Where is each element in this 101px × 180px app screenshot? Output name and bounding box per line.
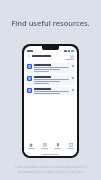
button[interactable]: Open link bbox=[26, 75, 75, 85]
staticText: do eiusmod tempor incididunt ut labore m… bbox=[18, 170, 84, 174]
button[interactable]: Open link bbox=[71, 88, 74, 91]
staticText: Find useful resources. bbox=[0, 18, 101, 28]
button[interactable]: Saved bbox=[51, 140, 64, 152]
button[interactable]: Open link bbox=[71, 64, 74, 67]
staticText: Lorem ipsum dolor sit amet consectetur a… bbox=[15, 165, 87, 169]
button[interactable]: Open link bbox=[71, 76, 74, 79]
button[interactable]: Menu bbox=[69, 54, 74, 59]
button[interactable]: Home bbox=[24, 140, 38, 152]
button[interactable]: Back bbox=[27, 54, 31, 58]
button[interactable]: More bbox=[64, 140, 77, 152]
button[interactable]: Open link bbox=[26, 63, 75, 73]
button[interactable]: Open link bbox=[26, 87, 75, 95]
button[interactable]: Resources bbox=[38, 140, 51, 152]
